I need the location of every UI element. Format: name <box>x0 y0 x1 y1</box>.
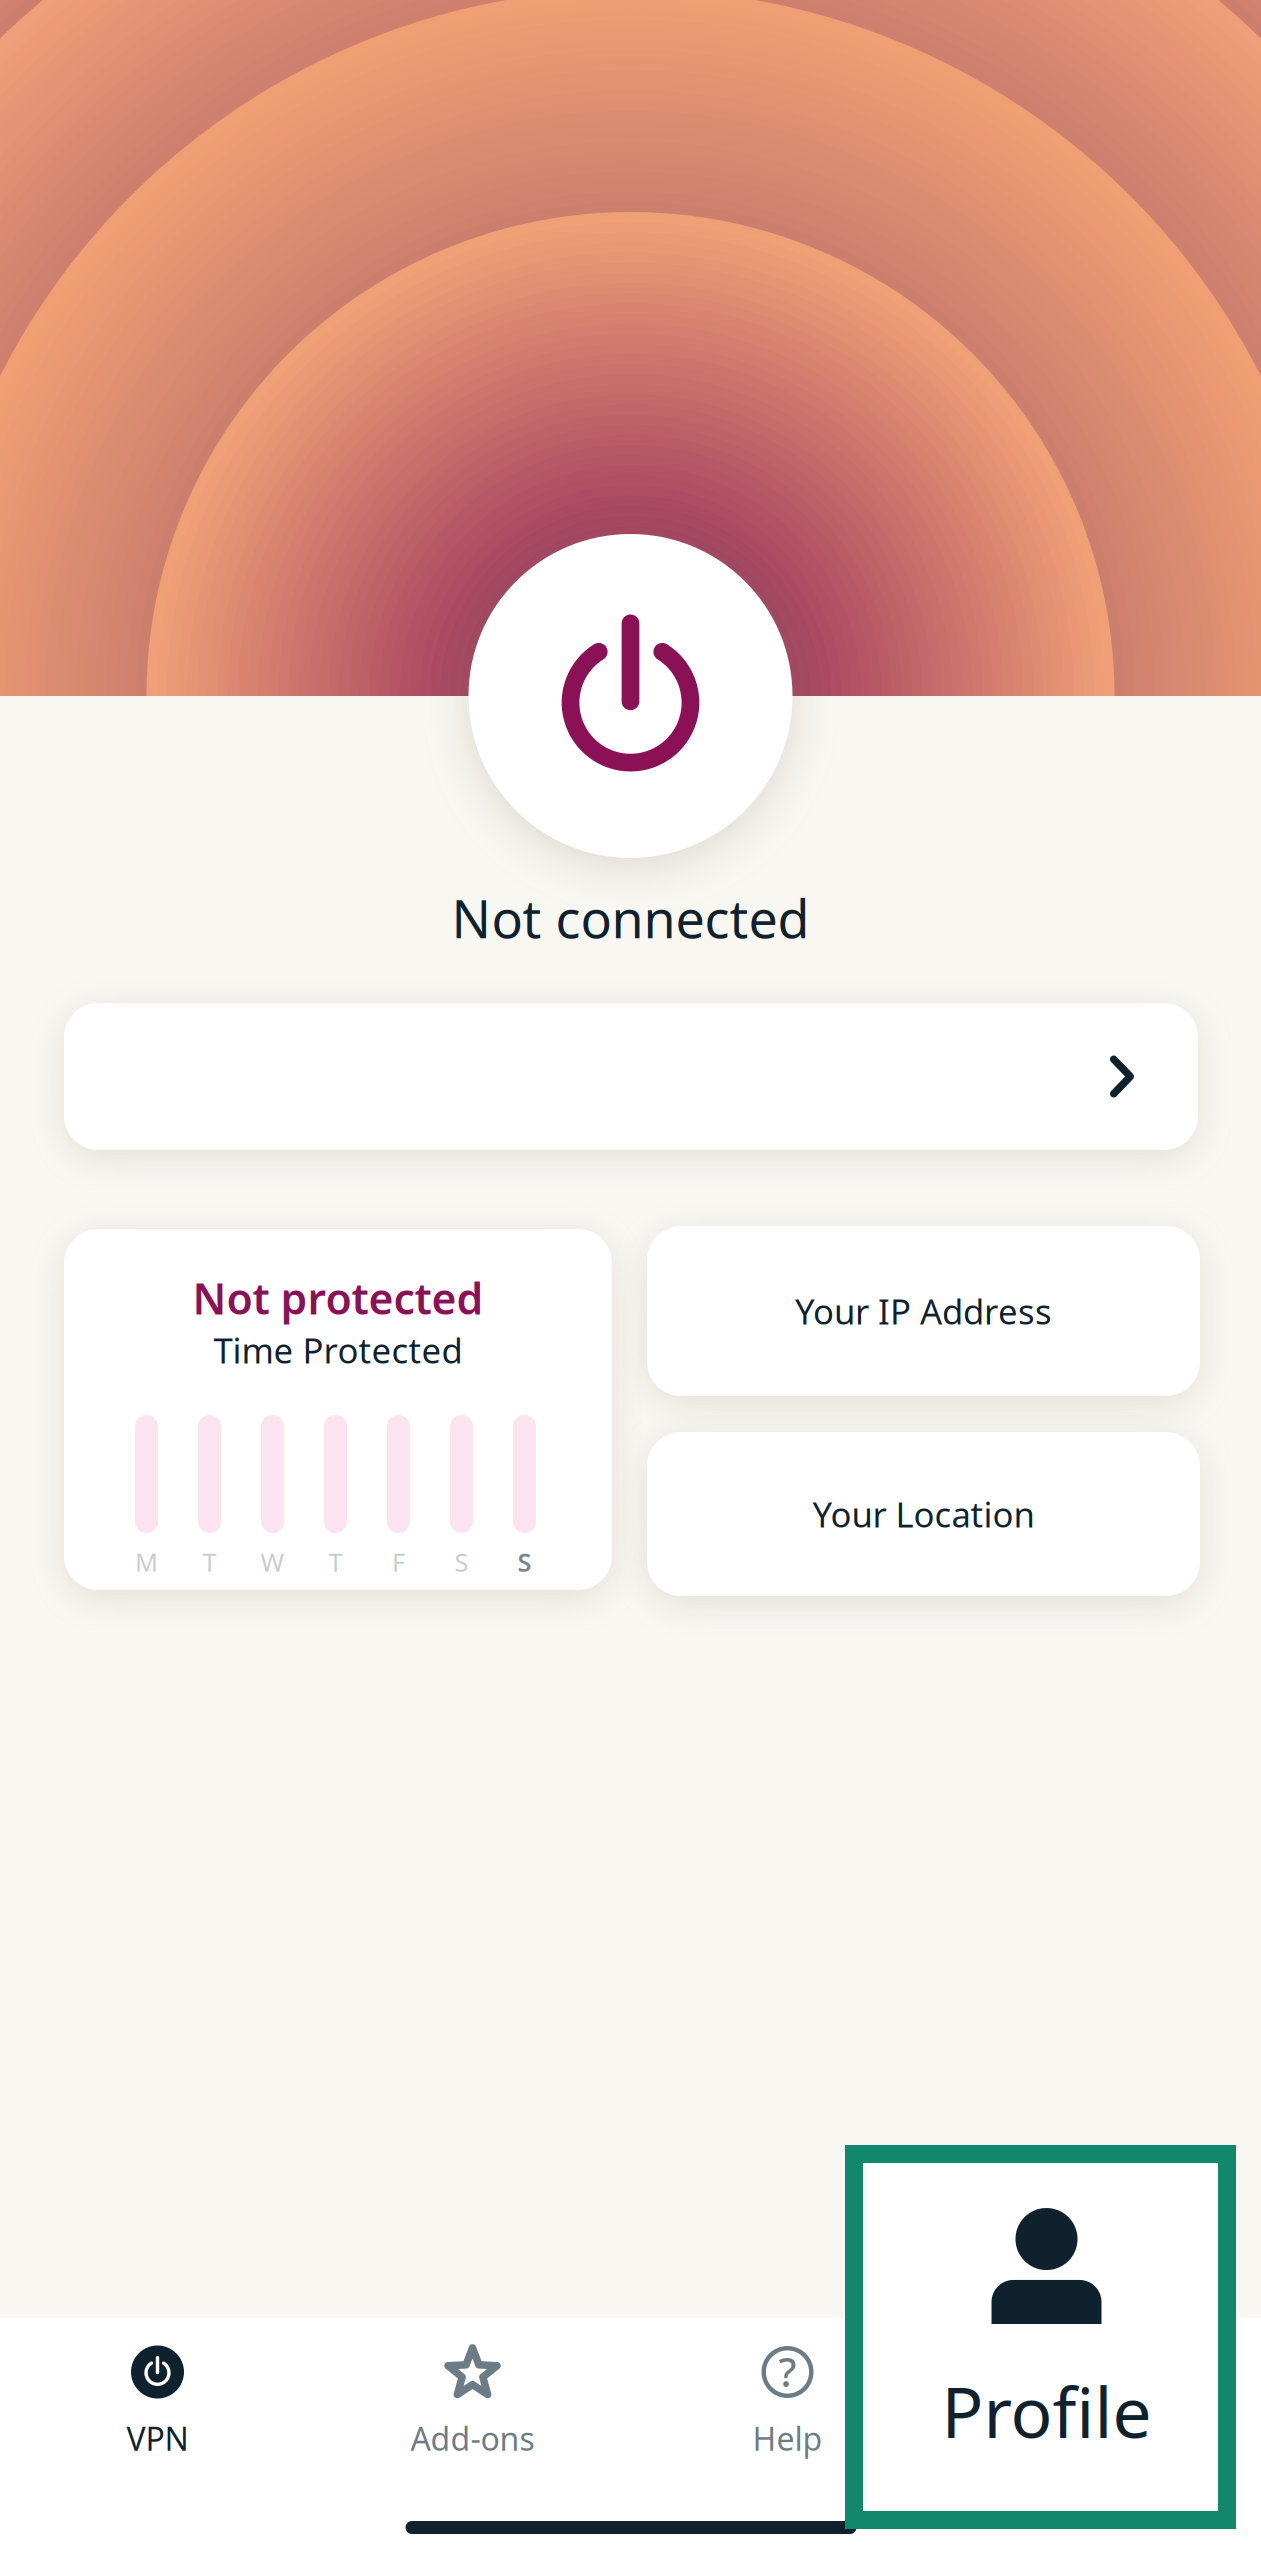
staticText: VPN <box>126 2417 188 2459</box>
staticText: W <box>260 1545 284 1579</box>
button[interactable]: ? <box>630 2318 945 2560</box>
button[interactable]: VPN <box>0 2318 315 2560</box>
staticText: Help <box>752 2417 822 2459</box>
button[interactable]: Your IP Address <box>647 1226 1200 1396</box>
staticText: S <box>517 1545 531 1579</box>
staticText: ? <box>778 2345 796 2398</box>
button[interactable]: Select region <box>64 1003 1198 1150</box>
staticText: T <box>328 1545 342 1579</box>
button[interactable]: Time protected <box>64 1229 612 1590</box>
staticText: S <box>454 1545 468 1579</box>
staticText: Profile <box>941 2365 1151 2457</box>
staticText: Time Protected <box>213 1327 462 1373</box>
staticText: Your IP Address <box>795 1288 1052 1334</box>
staticText: Not protected <box>192 1270 483 1326</box>
button[interactable]: Connect <box>468 534 792 858</box>
staticText: Not connected <box>451 883 809 953</box>
staticText: T <box>202 1545 216 1579</box>
staticText: M <box>135 1545 158 1579</box>
staticText: Your Location <box>812 1491 1034 1537</box>
button[interactable]: Your Location <box>647 1432 1200 1596</box>
staticText: Add-ons <box>410 2417 534 2459</box>
button[interactable]: Add-ons <box>315 2318 630 2560</box>
staticText: F <box>392 1545 405 1579</box>
button[interactable]: Profile <box>863 2163 1218 2511</box>
